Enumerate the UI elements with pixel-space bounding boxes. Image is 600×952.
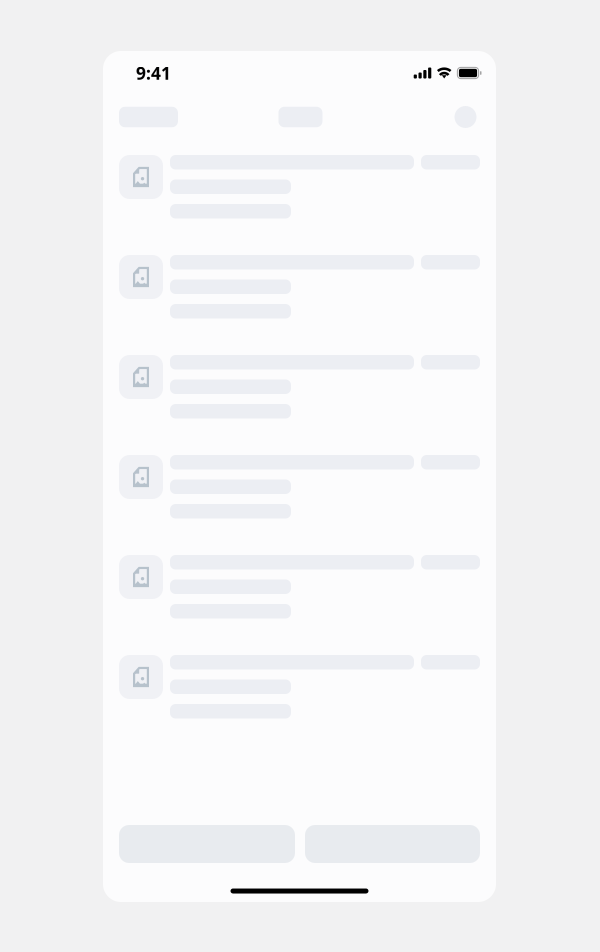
button[interactable]: Loading item — [119, 555, 480, 617]
button[interactable]: Loading item — [119, 155, 480, 217]
staticText: 9:41 — [136, 61, 171, 84]
button[interactable]: Profile — [454, 106, 476, 128]
button[interactable]: Loading item — [119, 455, 480, 517]
button[interactable]: Loading item — [119, 655, 480, 717]
button[interactable]: Loading item — [119, 355, 480, 417]
button[interactable]: Loading item — [119, 255, 480, 317]
